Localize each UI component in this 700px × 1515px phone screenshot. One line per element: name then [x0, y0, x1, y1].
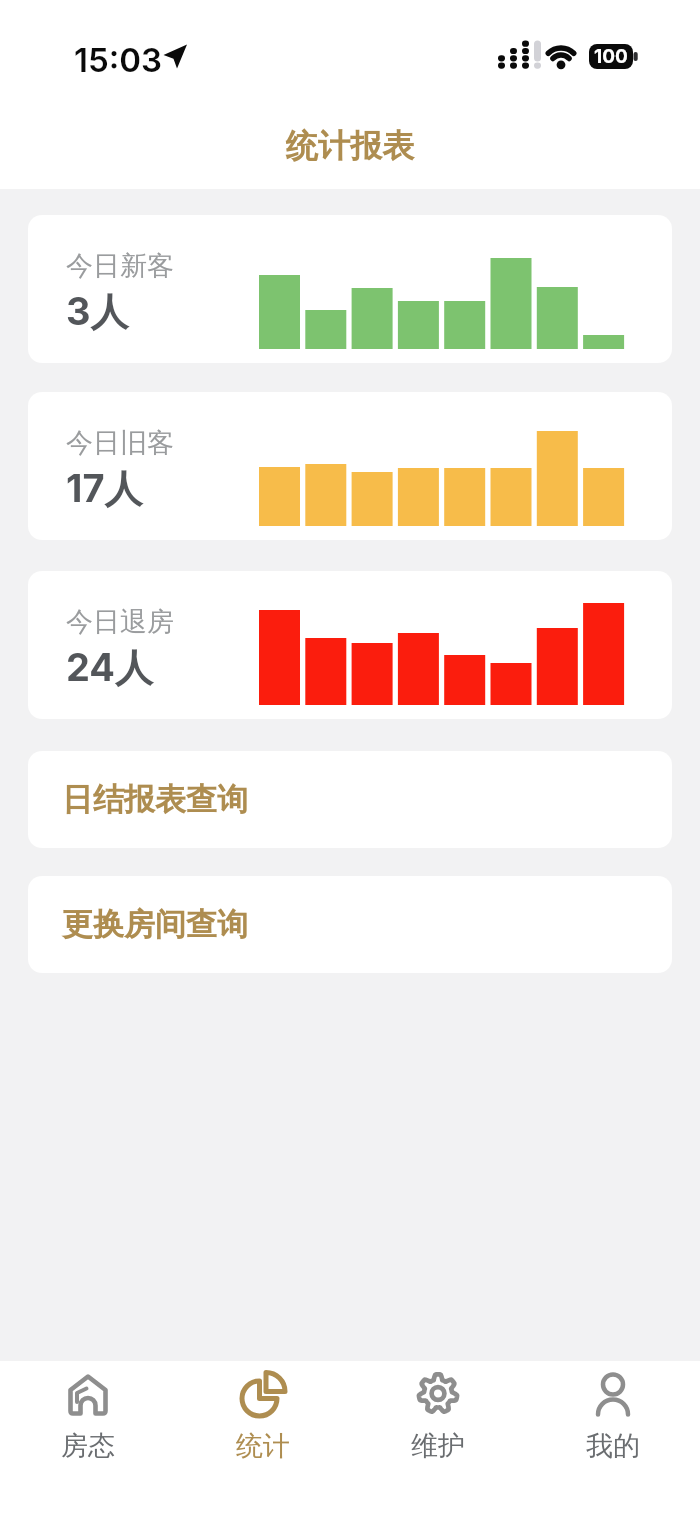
- button[interactable]: 维护: [350, 1361, 525, 1515]
- button[interactable]: 我的: [525, 1361, 700, 1515]
- staticText: 15:03: [74, 40, 162, 80]
- button[interactable]: 日结报表查询: [28, 751, 672, 848]
- staticText: 统计: [236, 1429, 290, 1463]
- button[interactable]: 更换房间查询: [28, 876, 672, 973]
- staticText: 3人: [66, 288, 129, 336]
- button[interactable]: 房态: [0, 1361, 175, 1515]
- staticText: 我的: [586, 1429, 640, 1463]
- staticText: 今日退房: [66, 605, 174, 639]
- staticText: 维护: [411, 1429, 465, 1463]
- button[interactable]: 统计: [175, 1361, 350, 1515]
- staticText: 今日新客: [66, 249, 174, 283]
- staticText: 17人: [66, 465, 143, 513]
- staticText: 统计报表: [286, 126, 414, 166]
- staticText: 24人: [66, 644, 154, 692]
- staticText: 日结报表查询: [62, 780, 248, 819]
- staticText: 房态: [61, 1429, 115, 1463]
- staticText: 今日旧客: [66, 426, 174, 460]
- staticText: 100: [594, 45, 628, 68]
- button[interactable]: 今日退房: [28, 571, 672, 719]
- button[interactable]: 今日新客: [28, 215, 672, 363]
- button[interactable]: 今日旧客: [28, 392, 672, 540]
- staticText: 更换房间查询: [62, 905, 248, 944]
